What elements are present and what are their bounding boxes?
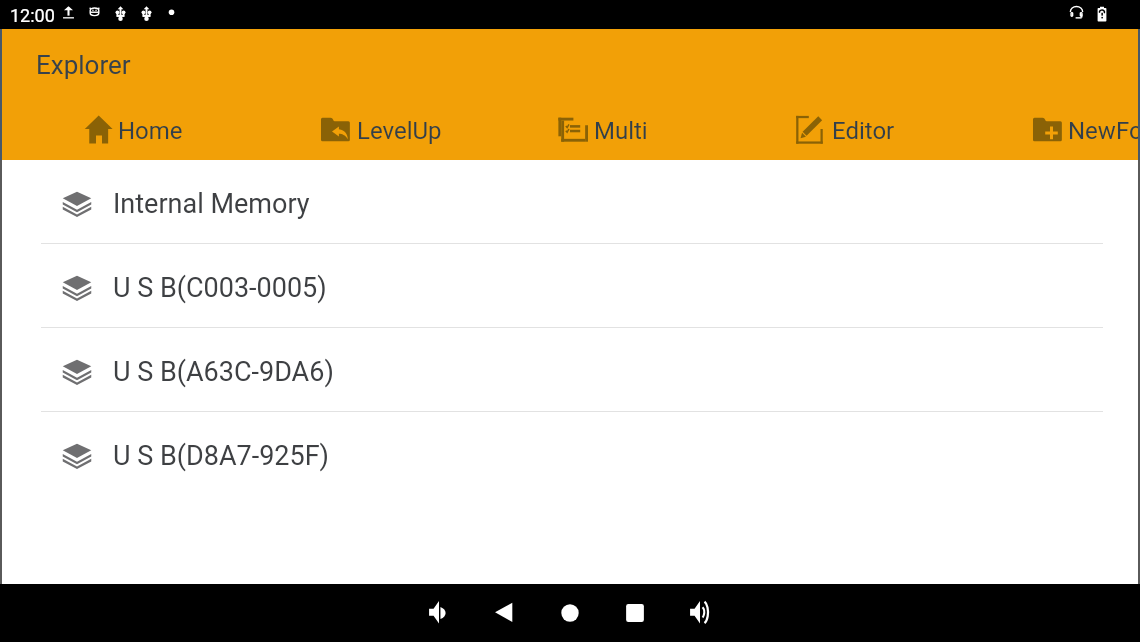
button[interactable]: LevelUp	[320, 114, 437, 146]
staticText: U S B(D8A7-925F)	[113, 440, 329, 472]
staticText: U S B(C003-0005)	[113, 272, 327, 304]
staticText: 12:00	[10, 5, 55, 26]
button[interactable]: Recents	[602, 584, 668, 642]
staticText: Editor	[832, 117, 895, 145]
button[interactable]: Internal Memory	[0, 160, 1140, 244]
staticText: LevelUp	[357, 117, 442, 145]
button[interactable]: U S B(C003-0005)	[0, 244, 1140, 328]
staticText: NewFolder	[1068, 117, 1140, 145]
button[interactable]: NewFolder	[1032, 114, 1140, 146]
staticText: Home	[118, 117, 183, 145]
staticText: Explorer	[36, 50, 131, 80]
button[interactable]: Home	[84, 114, 198, 146]
staticText: Multi	[594, 117, 648, 145]
staticText: Internal Memory	[113, 188, 310, 220]
button[interactable]: U S B(A63C-9DA6)	[0, 328, 1140, 412]
button[interactable]: Editor	[795, 114, 912, 146]
button[interactable]: Volume up	[667, 584, 733, 642]
button[interactable]: U S B(D8A7-925F)	[0, 412, 1140, 496]
button[interactable]: Volume down	[406, 584, 472, 642]
staticText: U S B(A63C-9DA6)	[113, 356, 334, 388]
button[interactable]: Home	[537, 584, 603, 642]
button[interactable]: Back	[471, 584, 537, 642]
button[interactable]: Multi	[558, 114, 674, 146]
